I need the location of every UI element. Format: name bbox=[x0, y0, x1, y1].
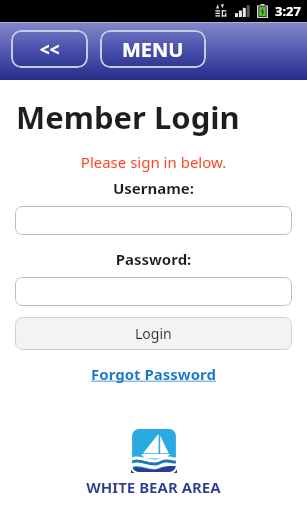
button[interactable] bbox=[15, 277, 292, 306]
button[interactable]: << bbox=[11, 30, 88, 68]
button[interactable] bbox=[15, 206, 292, 235]
staticText: Login bbox=[135, 324, 172, 343]
staticText: Please sign in below. bbox=[0, 152, 307, 172]
button[interactable]: MENU bbox=[100, 30, 206, 68]
button[interactable]: Login bbox=[15, 317, 292, 350]
staticText: Username: bbox=[0, 178, 307, 198]
staticText: << bbox=[40, 38, 60, 61]
staticText: WHITE BEAR AREA bbox=[86, 477, 221, 497]
staticText: MENU bbox=[122, 36, 184, 63]
staticText: Member Login bbox=[16, 96, 240, 138]
other: White Bear Area logo bbox=[131, 428, 177, 473]
staticText: 3:27 bbox=[275, 2, 301, 20]
staticText: Password: bbox=[0, 249, 307, 269]
button[interactable]: Forgot Password bbox=[0, 364, 307, 384]
